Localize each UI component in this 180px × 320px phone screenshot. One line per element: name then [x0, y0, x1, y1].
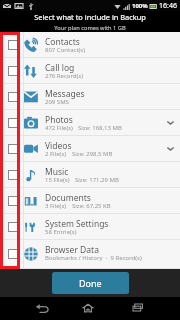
- staticText: 209 SMS: [45, 98, 69, 106]
- button[interactable]: Home: [76, 297, 100, 320]
- staticText: 276 Record(s): [45, 72, 84, 80]
- button[interactable]: Videos: [0, 136, 180, 161]
- staticText: Your plan comes with 1 GB: [54, 24, 126, 32]
- staticText: 472 File(s): [45, 124, 73, 132]
- staticText: Contacts: [45, 36, 80, 48]
- staticText: Done: [79, 277, 102, 289]
- button[interactable]: Photos: [0, 110, 180, 135]
- button[interactable]: Back: [30, 297, 54, 320]
- staticText: Messages: [45, 88, 85, 100]
- staticText: Size: 67,25 KB: [72, 202, 111, 210]
- button[interactable]: Contacts: [0, 32, 180, 57]
- staticText: 2 File(s): [45, 150, 67, 158]
- staticText: Size: 171,29 MB: [75, 176, 119, 184]
- staticText: 3 File(s): [45, 202, 67, 210]
- staticText: Music: [45, 166, 69, 178]
- staticText: Videos: [45, 140, 72, 152]
- staticText: Size: 168,13 MB: [78, 124, 122, 132]
- button[interactable]: Documents: [0, 188, 180, 213]
- button[interactable]: Call log: [0, 58, 180, 83]
- button[interactable]: Browser Data: [0, 240, 180, 268]
- staticText: Browser Data: [45, 244, 99, 256]
- button[interactable]: System Settings: [0, 214, 180, 239]
- button[interactable]: Done: [52, 272, 129, 294]
- staticText: Call log: [45, 62, 75, 74]
- staticText: System Settings: [45, 218, 109, 230]
- staticText: Select what to include in Backup: [34, 12, 146, 22]
- staticText: 58 Entrie(s): [45, 228, 77, 236]
- button[interactable]: Messages: [0, 84, 180, 109]
- staticText: Size: 298,5 MB: [72, 150, 113, 158]
- staticText: Bookmarks / History - 9 Record(s): [45, 254, 142, 262]
- button[interactable]: Music: [0, 162, 180, 187]
- button[interactable]: Recent apps: [126, 297, 150, 320]
- staticText: Documents: [45, 192, 91, 204]
- staticText: 15 File(s): [45, 176, 70, 184]
- staticText: 100%: [132, 2, 148, 10]
- staticText: Photos: [45, 114, 73, 126]
- staticText: 16:46: [159, 1, 177, 11]
- staticText: 807 Contact(s): [45, 46, 86, 54]
